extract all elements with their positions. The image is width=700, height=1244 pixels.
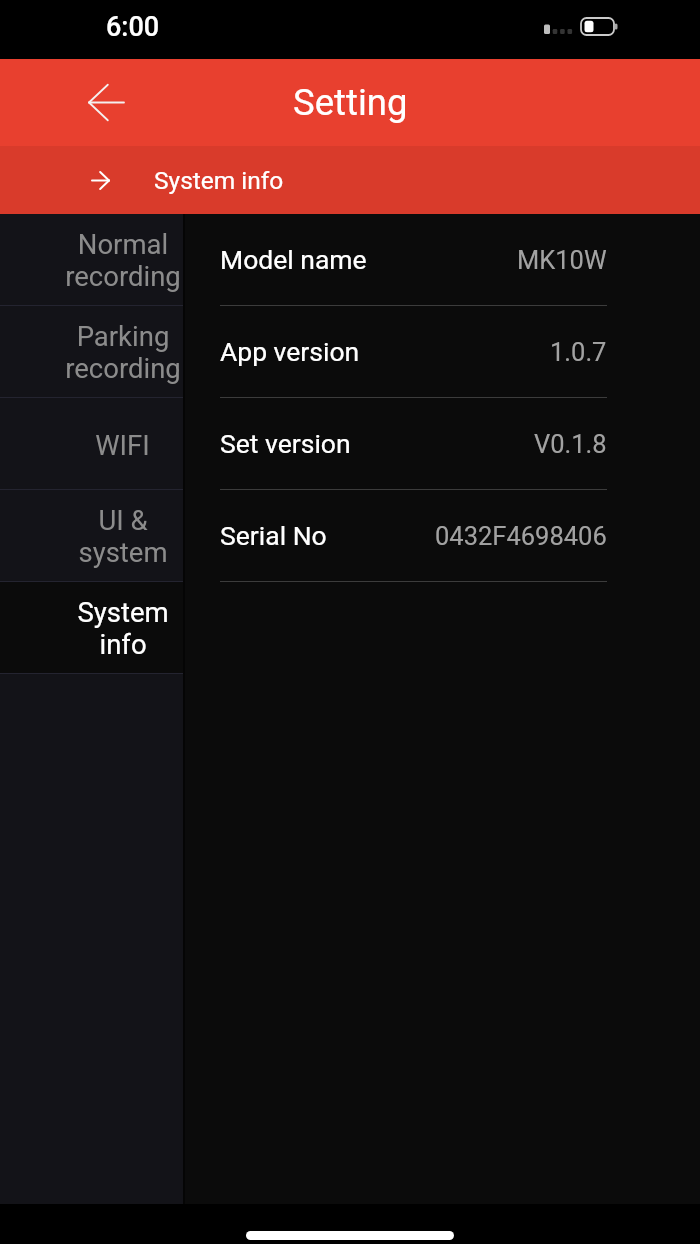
staticText: UI & system <box>78 504 168 569</box>
button[interactable]: Model name <box>185 214 700 305</box>
staticText: Normal recording <box>65 228 181 293</box>
button[interactable]: Forward <box>0 146 700 214</box>
button[interactable]: Back <box>62 59 150 146</box>
staticText: 6:00 <box>106 11 160 43</box>
button[interactable]: Parking recording <box>0 306 183 397</box>
staticText: Serial No <box>220 520 327 551</box>
staticText: System info <box>77 596 169 661</box>
staticText: Setting <box>293 81 408 124</box>
staticText: MK10W <box>517 245 607 275</box>
staticText: V0.1.8 <box>534 429 607 459</box>
staticText: Model name <box>220 244 367 275</box>
staticText: App version <box>220 336 360 367</box>
other: Forward <box>92 172 109 189</box>
staticText: 1.0.7 <box>550 337 607 367</box>
button[interactable]: Normal recording <box>0 214 183 305</box>
button[interactable]: Serial No <box>185 490 700 581</box>
button[interactable]: WIFI <box>0 398 183 489</box>
button[interactable]: UI & system <box>0 490 183 581</box>
staticText: WIFI <box>95 429 150 461</box>
staticText: Parking recording <box>65 320 181 385</box>
button[interactable]: App version <box>185 306 700 397</box>
staticText: Set version <box>220 428 351 459</box>
staticText: 0432F4698406 <box>435 521 607 551</box>
button[interactable]: System info <box>0 582 183 673</box>
button[interactable]: Set version <box>185 398 700 489</box>
staticText: System info <box>154 166 284 195</box>
